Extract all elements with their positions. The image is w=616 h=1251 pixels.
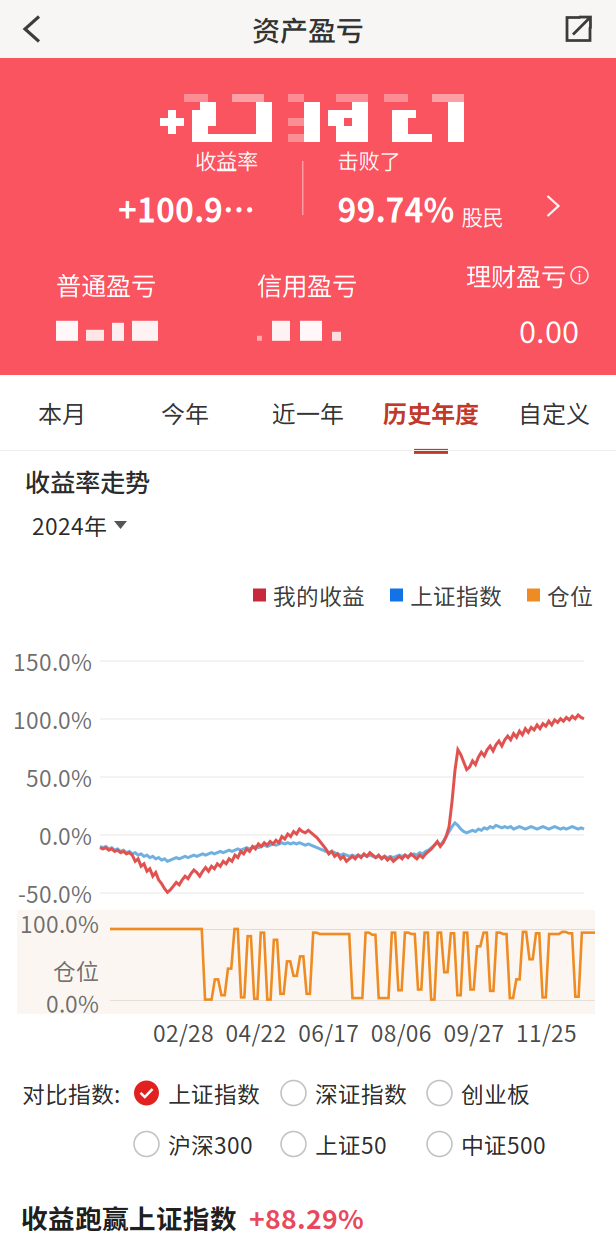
button[interactable]: 中证500 [427,1128,546,1160]
staticText: 对比指数: [22,1077,120,1109]
staticText: 沪深300 [168,1128,253,1160]
staticText: 收益跑赢上证指数 [21,1198,237,1237]
button[interactable]: 深证指数 [281,1077,407,1109]
button[interactable]: 历史年度 [369,375,492,450]
staticText: 本月 [38,395,86,430]
staticText: 0.0% [39,819,92,851]
staticText: +100.96% [118,185,258,232]
staticText: 06/17 [298,1016,359,1048]
button[interactable]: 返回 [0,0,59,58]
staticText: 04/22 [226,1016,287,1048]
staticText: 股民 [461,201,503,232]
staticText: 普通盈亏 [56,266,156,303]
staticText: 100.0% [13,703,92,735]
staticText: 0.0% [46,986,99,1019]
staticText: 上证50 [315,1128,387,1160]
staticText: 100.0% [20,907,99,940]
staticText: 09/27 [443,1016,504,1048]
staticText: 历史年度 [383,395,479,430]
button[interactable]: 上证50 [281,1128,387,1160]
staticText: +88.29% [249,1198,364,1237]
staticText: 上证指数 [410,579,502,611]
staticText: 上证指数 [168,1077,260,1109]
staticText: 仓位 [53,954,99,986]
button[interactable]: 上证指数 [134,1077,260,1109]
button[interactable]: 自定义 [492,375,615,450]
button[interactable]: 沪深300 [134,1128,253,1160]
button[interactable]: 2024年 [0,495,616,555]
button[interactable]: 今年 [123,375,246,450]
staticText: 11/25 [516,1016,577,1048]
staticText: 创业板 [461,1077,530,1109]
staticText: 深证指数 [315,1077,407,1109]
staticText: 自定义 [518,395,590,430]
staticText: 150.0% [13,645,92,677]
staticText: 中证500 [461,1128,546,1160]
staticText: 08/06 [371,1016,432,1048]
staticText: 99.74% [337,185,454,232]
staticText: 0.00 [519,308,579,352]
staticText: 收益率走势 [25,463,150,499]
staticText: 资产盈亏 [252,9,364,49]
staticText: -50.0% [18,877,92,909]
button[interactable]: 分享 [547,0,616,58]
staticText: 收益率 [195,144,258,175]
staticText: 我的收益 [273,579,365,611]
button[interactable]: 创业板 [427,1077,530,1109]
staticText: 50.0% [26,761,92,793]
staticText: 仓位 [547,579,593,611]
staticText: i [577,265,581,286]
staticText: 击败了 [337,144,400,175]
button[interactable]: 近一年 [246,375,369,450]
staticText: 理财盈亏 [466,257,566,294]
staticText: 信用盈亏 [257,266,357,303]
staticText: 02/28 [153,1016,214,1048]
staticText: 近一年 [272,395,344,430]
button[interactable]: 本月 [0,375,123,450]
staticText: 2024年 [32,509,107,541]
staticText: 今年 [161,395,209,430]
